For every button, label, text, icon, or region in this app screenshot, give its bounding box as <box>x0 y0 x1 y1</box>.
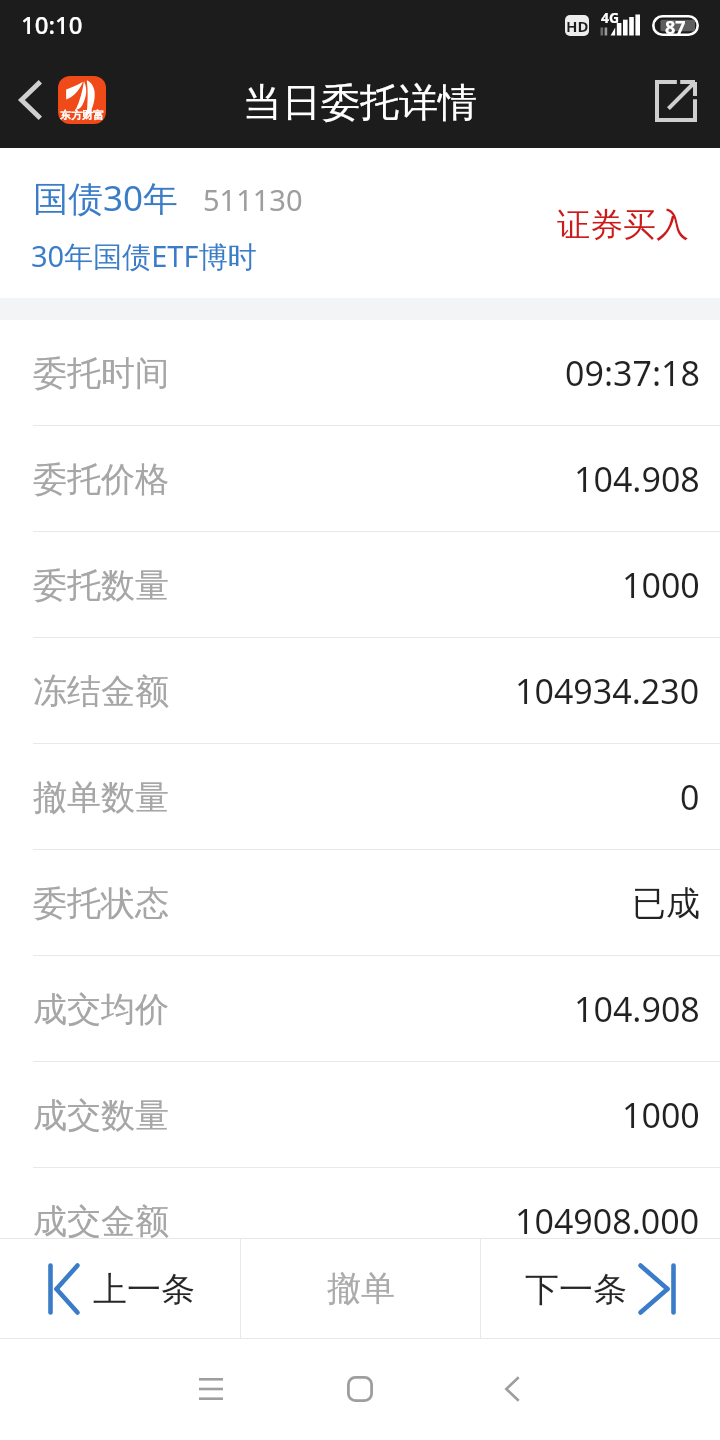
staticText: 国债30年 <box>33 174 179 222</box>
staticText: 104934.230 <box>515 668 700 714</box>
staticText: 10:10 <box>21 8 83 41</box>
staticText: 87 <box>665 15 686 36</box>
button[interactable]: Back <box>0 56 58 146</box>
staticText: 冻结金额 <box>33 670 169 713</box>
staticText: 104908.000 <box>515 1198 700 1244</box>
staticText: 成交时间 <box>33 1306 169 1349</box>
staticText: 撤单数量 <box>33 776 169 819</box>
button[interactable]: East Money logo <box>58 76 106 124</box>
staticText: 成交数量 <box>33 1094 169 1137</box>
staticText: 4G <box>601 8 620 27</box>
button[interactable]: Back <box>470 1347 554 1431</box>
button[interactable]: Recent apps <box>169 1347 253 1431</box>
staticText: 委托状态 <box>33 882 169 925</box>
button[interactable]: 委托时间 <box>0 320 720 426</box>
button[interactable]: 国债30年 <box>0 148 720 298</box>
button[interactable]: 下一条 <box>481 1238 720 1339</box>
staticText: 已成 <box>632 882 700 925</box>
button[interactable]: Share <box>648 57 720 147</box>
button[interactable]: 成交金额 <box>0 1168 720 1274</box>
staticText: 上一条 <box>93 1268 195 1311</box>
staticText: 09:37:18 <box>565 350 700 396</box>
staticText: 东方财富 <box>60 108 104 122</box>
button[interactable]: 上一条 <box>0 1238 240 1339</box>
staticText: 30年国债ETF博时 <box>31 236 257 276</box>
staticText: 09:37:18 <box>565 1304 700 1350</box>
staticText: 委托价格 <box>33 458 169 501</box>
staticText: 委托时间 <box>33 352 169 395</box>
button[interactable]: Home <box>318 1347 402 1431</box>
staticText: 0 <box>680 774 700 820</box>
button[interactable]: 成交均价 <box>0 956 720 1062</box>
staticText: HD <box>566 16 589 36</box>
staticText: 成交金额 <box>33 1200 169 1243</box>
staticText: 104.908 <box>574 986 700 1032</box>
staticText: 104.908 <box>574 456 700 502</box>
button[interactable]: 撤单 <box>241 1238 480 1339</box>
staticText: 当日委托详情 <box>243 78 477 127</box>
staticText: 511130 <box>203 180 303 219</box>
button[interactable]: 成交时间 <box>0 1274 720 1380</box>
staticText: 证券买入 <box>557 204 689 246</box>
button[interactable]: 撤单数量 <box>0 744 720 850</box>
staticText: 下一条 <box>525 1268 627 1311</box>
button[interactable]: 冻结金额 <box>0 638 720 744</box>
staticText: 1000 <box>622 1092 700 1138</box>
button[interactable]: 委托数量 <box>0 532 720 638</box>
staticText: 1000 <box>622 562 700 608</box>
staticText: 成交均价 <box>33 988 169 1031</box>
staticText: 委托数量 <box>33 564 169 607</box>
button[interactable]: 委托状态 <box>0 850 720 956</box>
staticText: 撤单 <box>327 1267 395 1310</box>
button[interactable]: 成交数量 <box>0 1062 720 1168</box>
button[interactable]: 委托价格 <box>0 426 720 532</box>
